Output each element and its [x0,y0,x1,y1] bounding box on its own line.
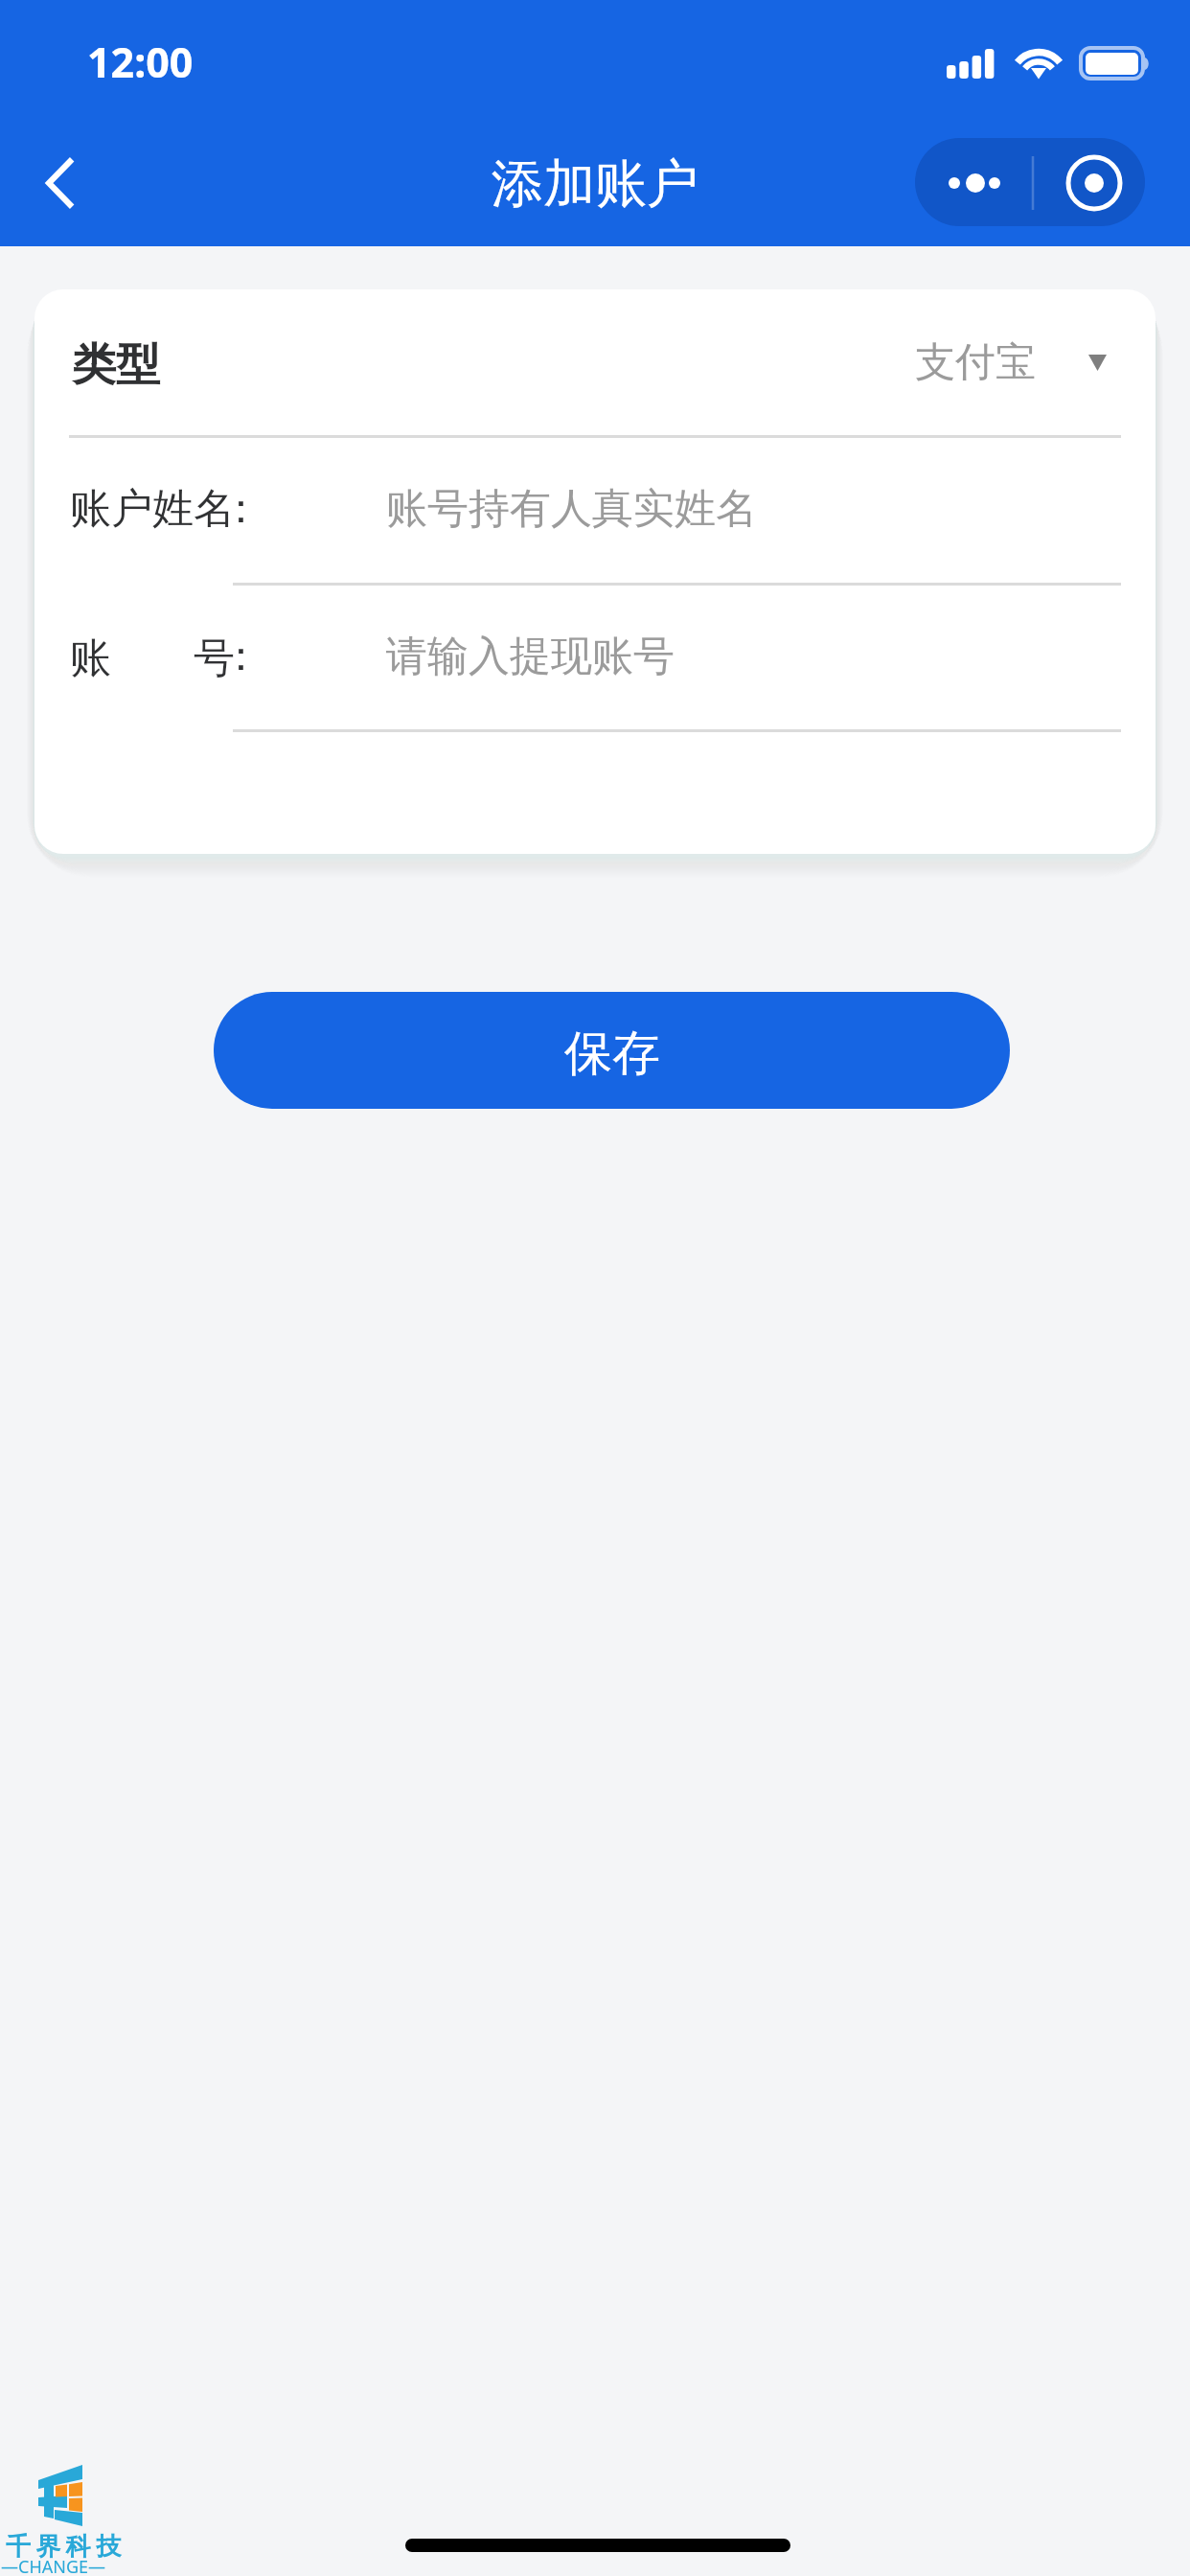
button[interactable]: 保存 [214,992,1010,1109]
button[interactable]: Back [0,126,119,246]
button[interactable]: 类型 [34,289,1156,435]
staticText: 类型 [72,337,160,393]
staticText: ： [220,483,262,535]
staticText: 账户姓名 [70,483,235,535]
staticText: ： [220,631,262,682]
staticText: 支付宝 [915,337,1036,388]
staticText: —CHANGE— [1,2555,106,2576]
staticText: 添加账户 [492,151,698,217]
staticText: 12:00 [87,34,194,90]
staticText: 账 号 [70,628,235,684]
staticText: 账号持有人真实姓名 [386,483,757,535]
button[interactable]: 账 号 [34,583,1156,729]
button[interactable]: More options [915,138,1145,226]
staticText: 保存 [564,1023,660,1084]
staticText: 请输入提现账号 [386,631,675,682]
button[interactable]: 账户姓名 [34,435,1156,583]
staticText: 千界科技 [3,2531,124,2563]
